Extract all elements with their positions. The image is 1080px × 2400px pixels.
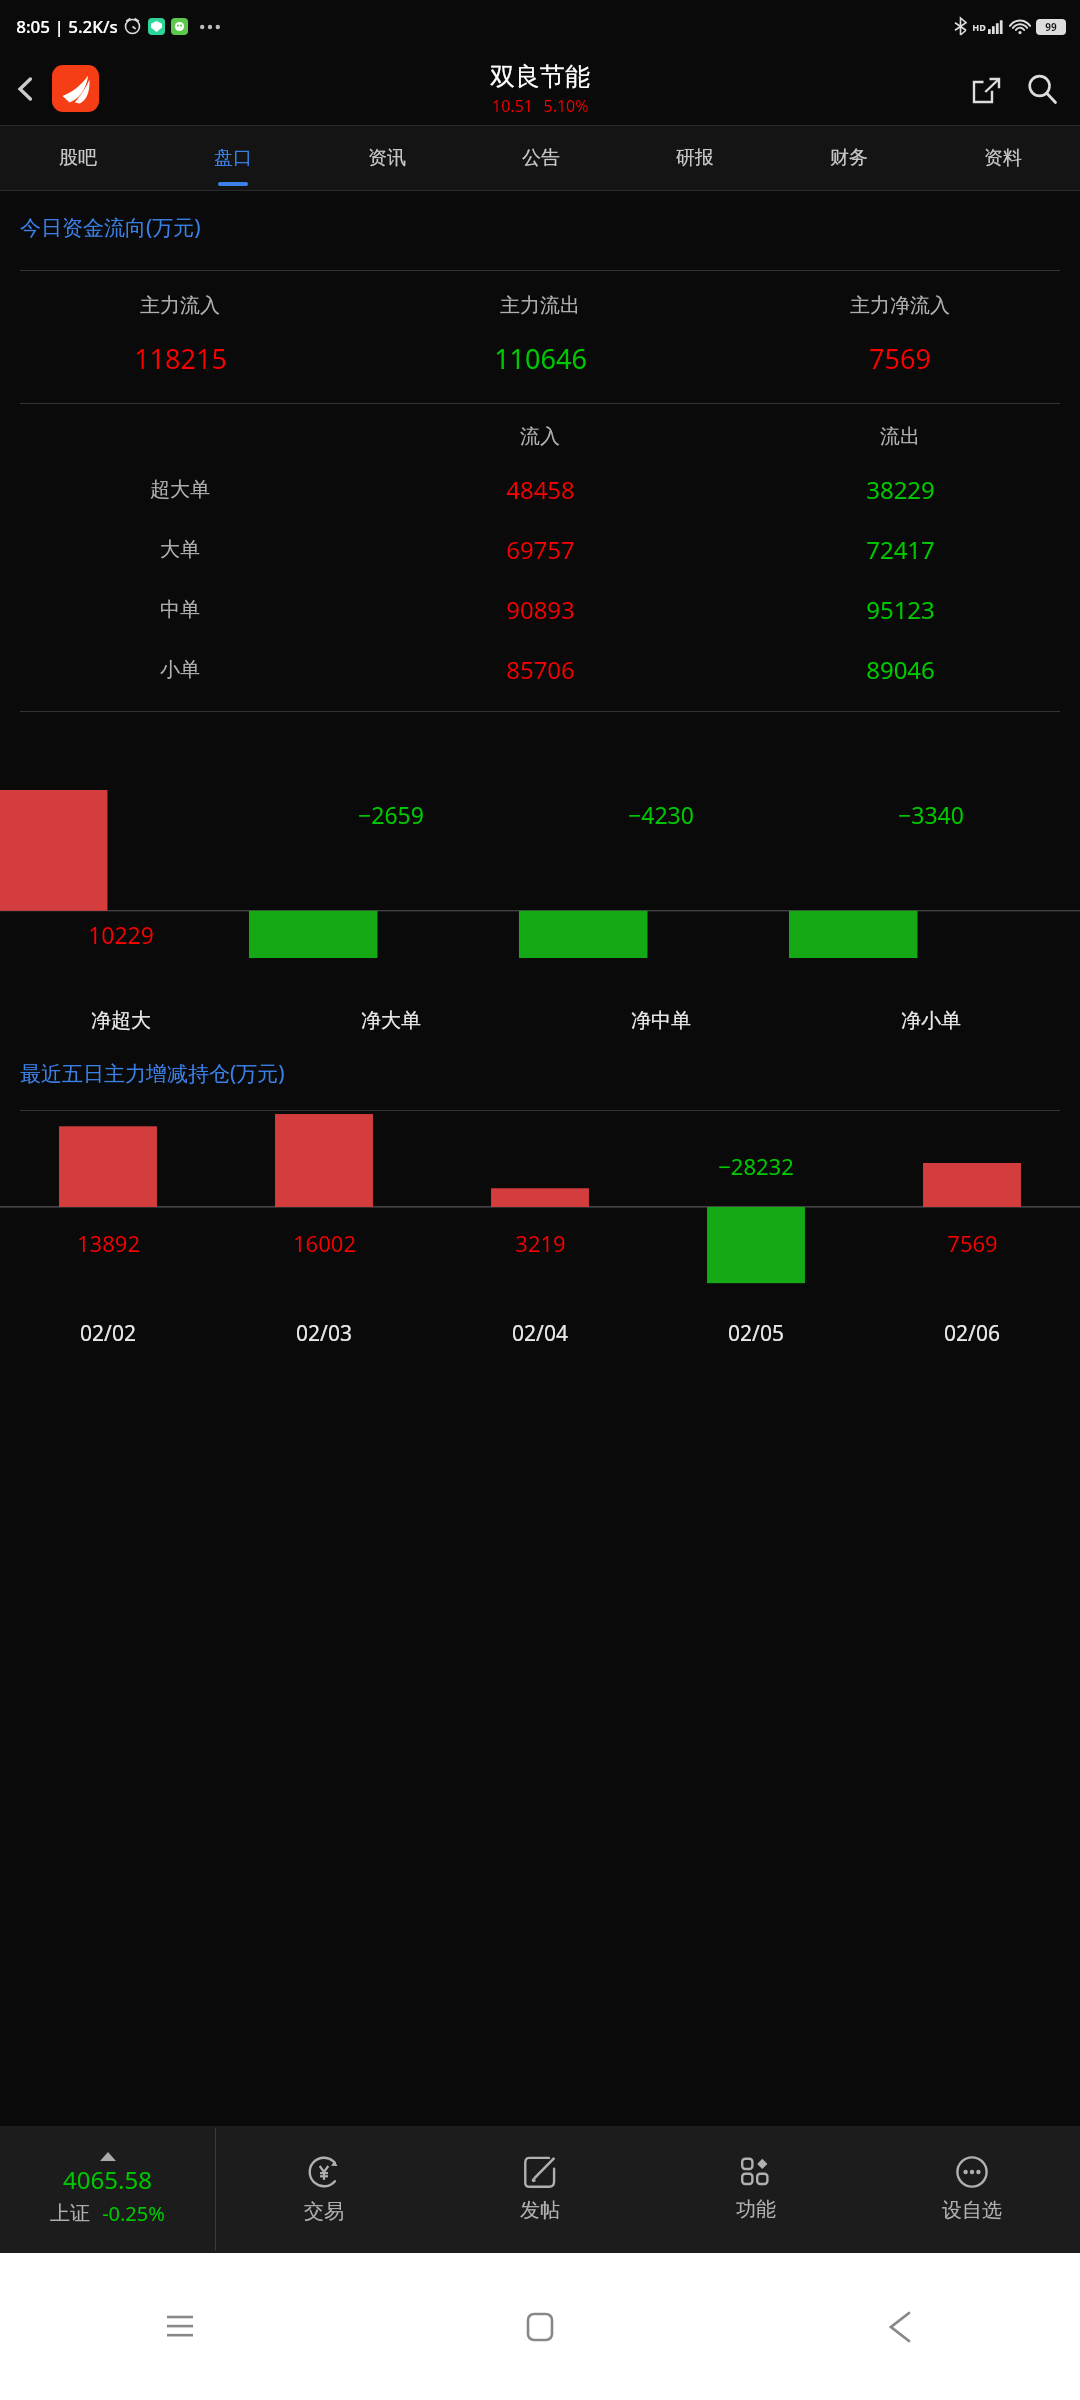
button[interactable]: 股吧 xyxy=(0,126,155,190)
button[interactable]: 设自选 xyxy=(864,2126,1080,2253)
staticText: 02/04 xyxy=(512,1319,568,1348)
staticText: 流出 xyxy=(880,424,920,449)
button[interactable]: Search xyxy=(1014,61,1070,117)
staticText: 公告 xyxy=(522,146,560,170)
staticText: −28232 xyxy=(718,1151,794,1181)
staticText: 02/02 xyxy=(80,1319,136,1348)
staticText: 资料 xyxy=(984,146,1022,170)
staticText: 主力净流入 xyxy=(850,293,950,318)
staticText: 95123 xyxy=(866,593,935,626)
staticText: 主力流出 xyxy=(500,293,580,318)
staticText: 38229 xyxy=(866,473,935,506)
staticText: 7569 xyxy=(947,1228,998,1258)
button[interactable]: 发帖 xyxy=(432,2126,648,2253)
staticText: 99 xyxy=(1045,20,1057,34)
button[interactable]: 资料 xyxy=(926,126,1080,190)
button[interactable]: App logo xyxy=(52,65,99,112)
staticText: 02/06 xyxy=(944,1319,1000,1348)
staticText: 90893 xyxy=(506,593,575,626)
staticText: 大单 xyxy=(160,537,200,562)
staticText: 财务 xyxy=(830,146,868,170)
button[interactable]: 4065.58 xyxy=(0,2126,215,2253)
staticText: 10229 xyxy=(88,919,154,950)
button[interactable]: 交易 xyxy=(216,2126,432,2253)
staticText: 发帖 xyxy=(520,2198,560,2223)
button[interactable]: Home xyxy=(360,2253,720,2400)
staticText: 上证 xyxy=(50,2201,90,2226)
staticText: 超大单 xyxy=(150,477,210,502)
staticText: 净中单 xyxy=(631,1008,691,1033)
staticText: 118215 xyxy=(134,340,227,377)
staticText: 10.51 xyxy=(492,95,533,117)
staticText: 89046 xyxy=(866,653,935,686)
staticText: 02/03 xyxy=(296,1319,352,1348)
staticText: 5.10% xyxy=(543,95,589,117)
staticText: 7569 xyxy=(869,340,931,377)
button[interactable]: Back xyxy=(0,63,52,115)
staticText: 85706 xyxy=(506,653,575,686)
staticText: 净大单 xyxy=(361,1008,421,1033)
staticText: 盘口 xyxy=(214,146,252,170)
button[interactable]: Back xyxy=(720,2253,1080,2400)
staticText: 02/05 xyxy=(728,1319,784,1348)
staticText: 净超大 xyxy=(91,1008,151,1033)
staticText: 69757 xyxy=(506,533,575,566)
staticText: 16002 xyxy=(293,1228,356,1258)
staticText: 8:05 | 5.2K/s xyxy=(16,15,118,38)
staticText: 研报 xyxy=(676,146,714,170)
staticText: 3219 xyxy=(515,1228,566,1258)
staticText: 13892 xyxy=(77,1228,140,1258)
staticText: 48458 xyxy=(506,473,575,506)
staticText: −2659 xyxy=(358,799,424,830)
staticText: 今日资金流向(万元) xyxy=(20,213,201,242)
staticText: 交易 xyxy=(304,2199,344,2224)
button[interactable]: Recent apps xyxy=(0,2253,360,2400)
staticText: 4065.58 xyxy=(63,2163,152,2196)
staticText: -0.25% xyxy=(102,2200,165,2227)
staticText: HD xyxy=(972,21,986,33)
button[interactable]: 资讯 xyxy=(310,126,464,190)
button[interactable]: 盘口 xyxy=(155,126,310,190)
staticText: −3340 xyxy=(898,799,964,830)
staticText: 功能 xyxy=(736,2197,776,2222)
staticText: 股吧 xyxy=(59,146,97,170)
staticText: 主力流入 xyxy=(140,293,220,318)
staticText: 110646 xyxy=(494,340,587,377)
staticText: −4230 xyxy=(628,799,694,830)
staticText: 最近五日主力增减持仓(万元) xyxy=(20,1059,285,1088)
button[interactable]: 公告 xyxy=(464,126,618,190)
button[interactable]: 功能 xyxy=(648,2126,864,2253)
staticText: 净小单 xyxy=(901,1008,961,1033)
button[interactable]: 研报 xyxy=(618,126,772,190)
staticText: 双良节能 xyxy=(490,61,590,92)
button[interactable]: Share xyxy=(958,61,1014,117)
staticText: 设自选 xyxy=(942,2198,1002,2223)
staticText: 72417 xyxy=(866,533,935,566)
staticText: 小单 xyxy=(160,657,200,682)
button[interactable]: 财务 xyxy=(772,126,926,190)
staticText: 资讯 xyxy=(368,146,406,170)
staticText: 流入 xyxy=(520,424,560,449)
staticText: 中单 xyxy=(160,597,200,622)
